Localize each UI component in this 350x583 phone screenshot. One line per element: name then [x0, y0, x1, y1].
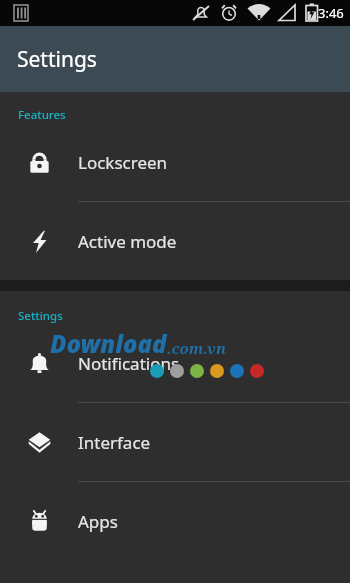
other: Apps	[26, 508, 53, 535]
other: Lockscreen	[26, 149, 53, 176]
button[interactable]: Apps	[0, 482, 350, 560]
other: Active mode	[26, 228, 53, 255]
staticText: Apps	[78, 510, 118, 533]
staticText: 3:46	[318, 4, 344, 22]
staticText: Interface	[78, 431, 151, 454]
staticText: Download	[50, 327, 167, 360]
staticText: Settings	[17, 45, 97, 74]
other: Interface	[26, 429, 53, 456]
button[interactable]: Active mode	[0, 202, 350, 280]
staticText: Active mode	[78, 230, 177, 253]
other: Notifications	[26, 350, 53, 377]
staticText: Lockscreen	[78, 151, 168, 174]
button[interactable]: Notifications	[0, 324, 350, 402]
staticText: Features	[18, 107, 66, 123]
button[interactable]: Lockscreen	[0, 123, 350, 201]
staticText: Notifications	[78, 352, 180, 375]
button[interactable]: Interface	[0, 403, 350, 481]
staticText: Settings	[18, 308, 63, 324]
staticText: .com.vn	[167, 338, 226, 358]
